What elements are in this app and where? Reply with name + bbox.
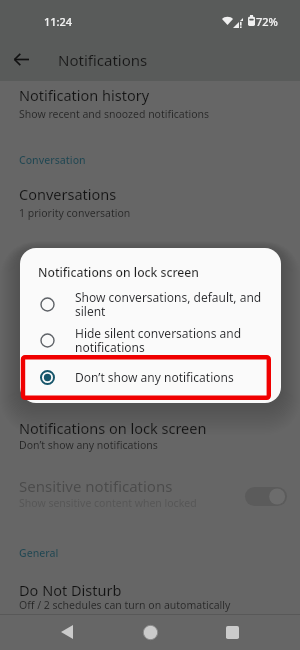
staticText: Conversation [19, 153, 86, 167]
staticText: General [19, 546, 59, 560]
button[interactable]: Show conversations, default, and silent [20, 289, 281, 319]
staticText: 1 priority conversation [19, 206, 131, 220]
staticText: Don’t show any notifications [19, 438, 158, 452]
button[interactable]: Recent apps [212, 620, 252, 644]
staticText: Show conversations, default, and silent [75, 289, 265, 319]
staticText: Hide silent conversations and notificati… [75, 325, 265, 355]
button[interactable]: Don’t show any notifications [20, 362, 281, 392]
staticText: Show sensitive content when locked [19, 496, 197, 510]
staticText: 72% [256, 14, 278, 29]
staticText: Sensitive notifications [19, 476, 173, 496]
staticText: Conversations [19, 184, 117, 204]
button[interactable]: Sensitive notifications toggle [245, 487, 287, 506]
button[interactable]: Back [47, 620, 87, 644]
staticText: Off / 2 schedules can turn on automatica… [19, 598, 231, 612]
button[interactable]: Home [130, 620, 170, 644]
staticText: 11:24 [44, 14, 73, 29]
staticText: Don’t show any notifications [75, 369, 265, 385]
staticText: Notifications [58, 50, 148, 70]
staticText: Notifications on lock screen [19, 418, 207, 438]
button[interactable]: Back [7, 45, 35, 73]
staticText: Show recent and snoozed notifications [19, 107, 210, 121]
staticText: Do Not Disturb [19, 580, 122, 600]
staticText: Notifications on lock screen [38, 264, 199, 281]
staticText: Notification history [19, 85, 150, 105]
button[interactable]: Hide silent conversations and notificati… [20, 325, 281, 355]
